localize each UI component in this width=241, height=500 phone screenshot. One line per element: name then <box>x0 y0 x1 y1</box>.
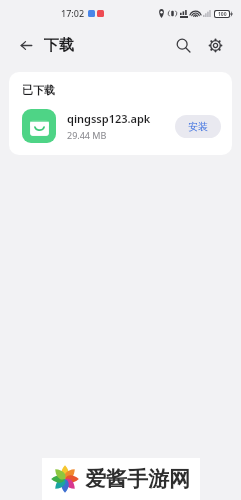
button[interactable]: qingssp123.apk <box>22 109 221 143</box>
staticText: 100 <box>218 11 227 17</box>
staticText: 17:02 <box>61 7 85 19</box>
staticText: 爱酱手游网 <box>85 466 190 492</box>
staticText: 已下载 <box>22 83 55 97</box>
staticText: 下载 <box>44 36 74 55</box>
staticText: qingssp123.apk <box>67 111 151 126</box>
button[interactable]: 安装 <box>175 115 221 138</box>
button[interactable]: Search <box>169 31 197 59</box>
button[interactable]: Settings <box>201 31 229 59</box>
staticText: 安装 <box>188 120 208 133</box>
staticText: 29.44 MB <box>67 129 107 141</box>
button[interactable]: Back <box>12 32 38 58</box>
